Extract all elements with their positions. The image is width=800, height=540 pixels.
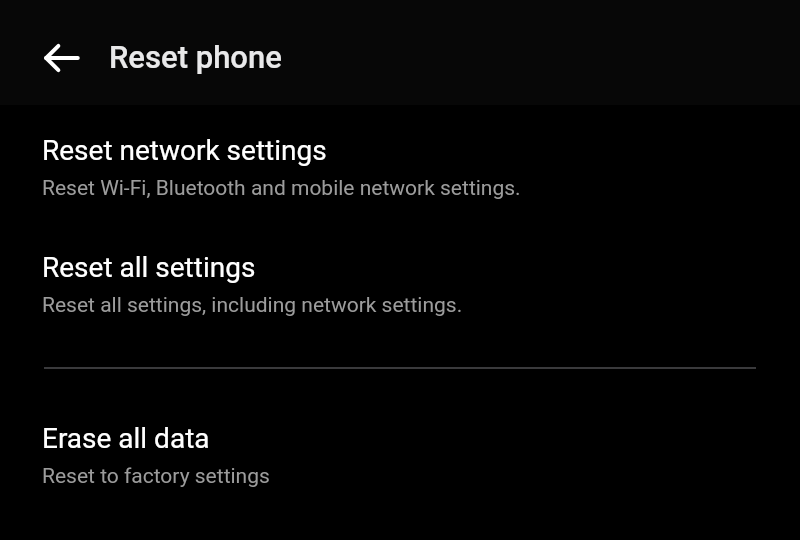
button[interactable]: Erase all data xyxy=(0,422,800,522)
staticText: Erase all data xyxy=(42,422,210,455)
staticText: Reset Wi-Fi, Bluetooth and mobile networ… xyxy=(42,176,521,201)
staticText: Reset all settings, including network se… xyxy=(42,293,463,318)
button[interactable]: Reset network settings xyxy=(0,134,800,234)
staticText: Reset phone xyxy=(109,39,282,75)
staticText: Reset to factory settings xyxy=(42,464,270,489)
staticText: Reset network settings xyxy=(42,134,327,167)
staticText: Reset all settings xyxy=(42,251,256,284)
button[interactable]: Back xyxy=(42,38,82,78)
button[interactable]: Reset all settings xyxy=(0,251,800,351)
